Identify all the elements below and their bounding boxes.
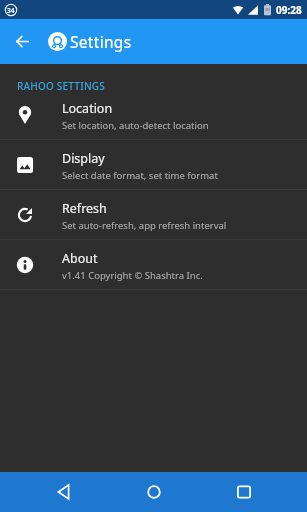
button[interactable] (109, 472, 199, 512)
button[interactable] (199, 472, 289, 512)
staticText: Select date format, set time format (62, 169, 218, 182)
button[interactable] (0, 19, 44, 64)
staticText: Set location, auto-detect location (62, 119, 209, 132)
staticText: Set auto-refresh, app refresh interval (62, 219, 227, 232)
button[interactable]: Refresh (0, 190, 307, 239)
button[interactable] (18, 472, 109, 512)
staticText: About (62, 250, 98, 267)
staticText: Location (62, 100, 113, 117)
staticText: Display (62, 150, 105, 167)
staticText: Settings (70, 31, 132, 52)
button[interactable]: Location (0, 90, 307, 139)
button[interactable]: Display (0, 140, 307, 189)
button[interactable]: About (0, 240, 307, 289)
staticText: 09:28 (276, 3, 302, 17)
staticText: Refresh (62, 200, 107, 217)
staticText: v1.41 Copyright © Shashtra Inc. (62, 269, 203, 282)
staticText: RAHOO SETTINGS (17, 79, 106, 93)
staticText: 34 (7, 6, 15, 15)
